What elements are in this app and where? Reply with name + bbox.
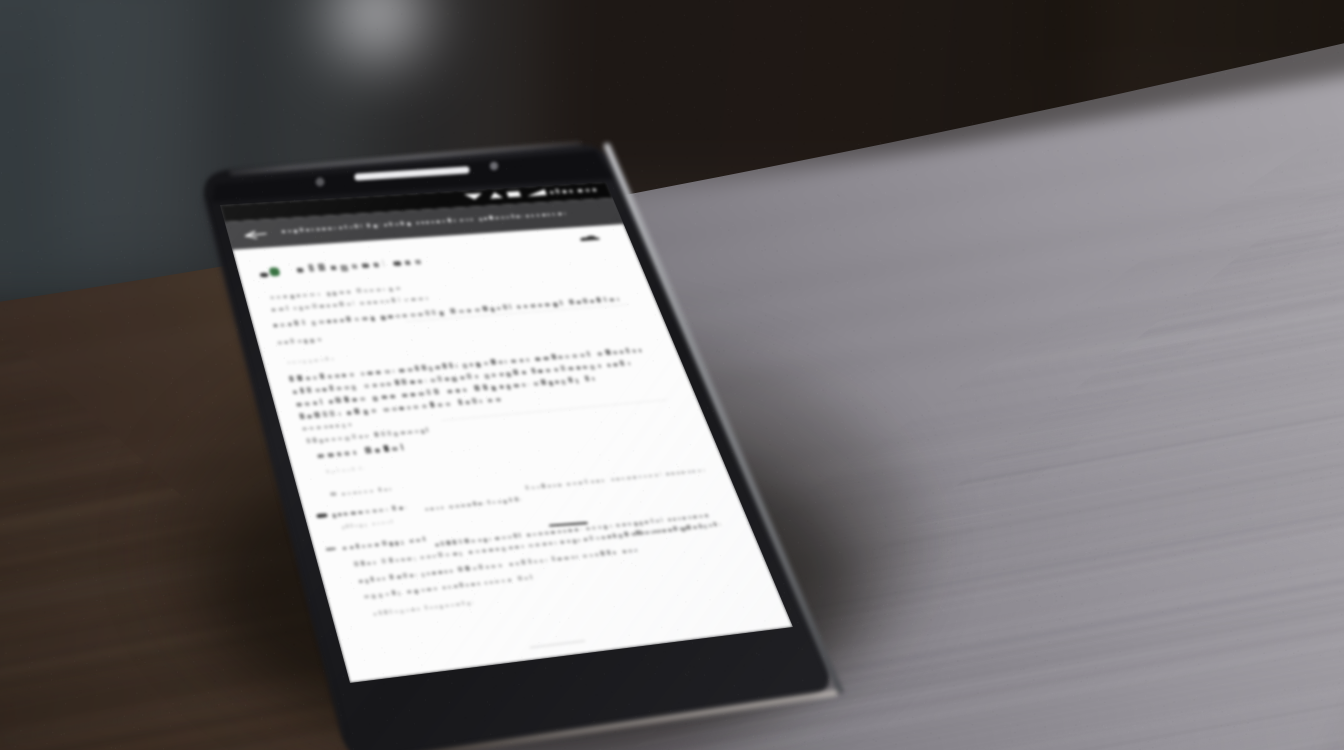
button[interactable]: Article screen on a phone [0, 0, 1344, 750]
